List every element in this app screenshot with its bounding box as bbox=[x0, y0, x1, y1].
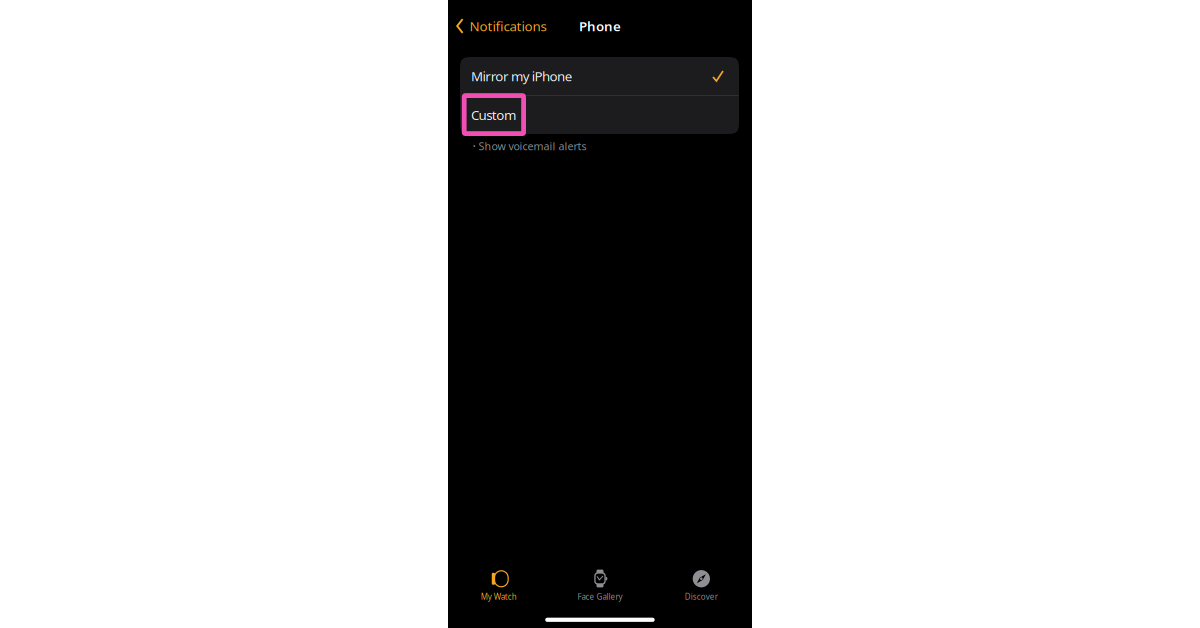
button[interactable]: My Watch bbox=[448, 556, 549, 604]
staticText: Phone bbox=[579, 17, 621, 35]
staticText: Discover bbox=[685, 591, 718, 602]
button[interactable]: Mirror my iPhone bbox=[460, 57, 739, 95]
button[interactable]: Notifications bbox=[448, 8, 554, 44]
staticText: Custom bbox=[471, 106, 516, 124]
staticText: Show voicemail alerts bbox=[479, 139, 587, 153]
staticText: Face Gallery bbox=[577, 591, 622, 602]
button[interactable]: Face Gallery bbox=[549, 556, 651, 604]
staticText: Mirror my iPhone bbox=[471, 67, 573, 85]
button[interactable]: Custom bbox=[460, 96, 739, 134]
staticText: Notifications bbox=[469, 17, 546, 35]
staticText: My Watch bbox=[481, 591, 517, 602]
button[interactable]: Discover bbox=[651, 556, 752, 604]
